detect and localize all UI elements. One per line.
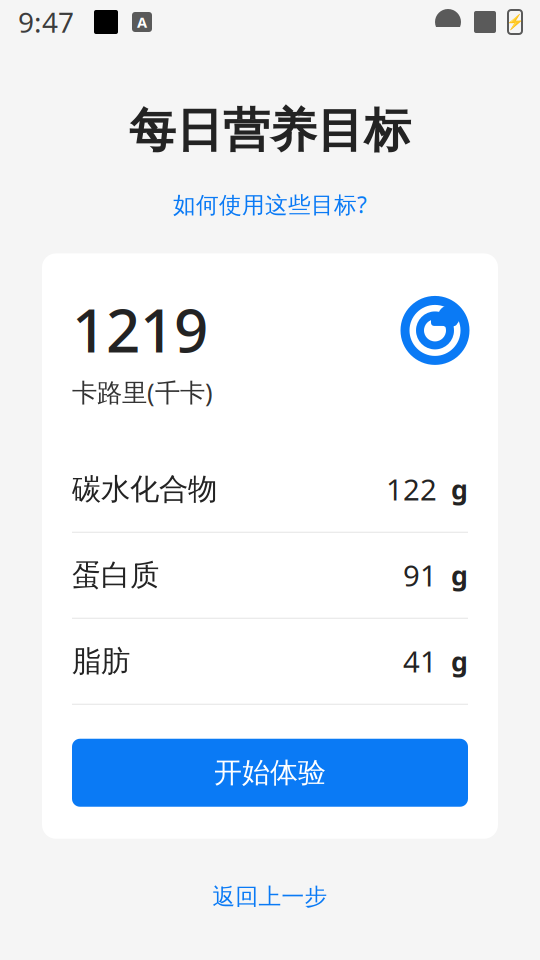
button[interactable]: 返回上一步 <box>202 877 337 916</box>
staticText: A <box>137 12 147 32</box>
staticText: ⚡ <box>506 14 524 30</box>
button[interactable]: 如何使用这些目标? <box>165 185 375 223</box>
staticText: 122 <box>386 470 437 509</box>
staticText: g <box>451 643 468 679</box>
staticText: 41 <box>403 642 437 681</box>
staticText: 碳水化合物 <box>72 471 217 507</box>
staticText: 9:47 <box>18 3 74 41</box>
staticText: 每日营养目标 <box>129 102 411 159</box>
staticText: 返回上一步 <box>212 883 327 910</box>
staticText: 卡路里(千卡) <box>72 375 213 409</box>
staticText: 如何使用这些目标? <box>173 189 367 219</box>
staticText: 脂肪 <box>72 643 130 679</box>
staticText: 开始体验 <box>214 755 326 790</box>
staticText: 1219 <box>72 289 208 369</box>
staticText: g <box>451 557 468 593</box>
staticText: 蛋白质 <box>72 557 159 593</box>
staticText: g <box>451 471 468 507</box>
staticText: 91 <box>403 556 437 595</box>
button[interactable]: 开始体验 <box>72 739 468 807</box>
